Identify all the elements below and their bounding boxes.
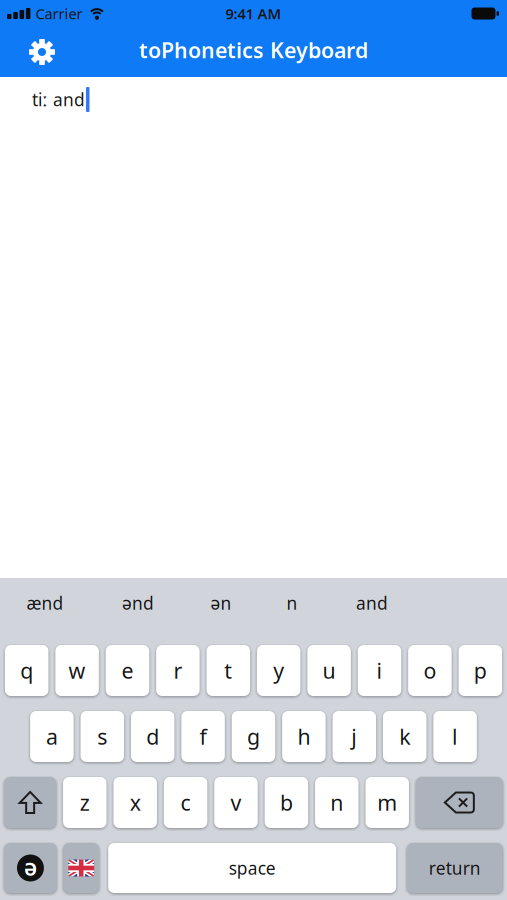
button[interactable]: p — [458, 645, 502, 696]
staticText: j — [351, 722, 357, 751]
button[interactable]: s — [81, 711, 124, 762]
button[interactable]: ən — [210, 591, 231, 614]
staticText: s — [97, 722, 107, 751]
button[interactable]: a — [30, 711, 74, 762]
button[interactable]: y — [257, 645, 300, 696]
staticText: space — [229, 856, 276, 879]
staticText: l — [452, 722, 458, 751]
button[interactable]: ənd — [122, 591, 154, 614]
staticText: p — [474, 656, 487, 685]
staticText: v — [230, 788, 241, 817]
button[interactable]: h — [282, 711, 326, 762]
staticText: i — [376, 656, 382, 685]
button[interactable]: u — [307, 645, 351, 696]
button[interactable]: i — [358, 645, 401, 696]
staticText: Carrier — [35, 4, 82, 23]
staticText: y — [273, 656, 284, 685]
staticText: m — [377, 788, 397, 817]
button[interactable]: g — [232, 711, 275, 762]
button[interactable]: z — [63, 777, 107, 828]
button[interactable]: e — [106, 645, 149, 696]
button[interactable]: Settings — [29, 39, 55, 65]
button[interactable]: c — [164, 777, 207, 828]
button[interactable]: k — [383, 711, 426, 762]
button[interactable]: Delete — [416, 777, 503, 828]
button[interactable]: ænd — [26, 591, 63, 614]
button[interactable]: space — [108, 843, 396, 893]
button[interactable]: and — [356, 591, 388, 614]
button[interactable]: q — [5, 645, 48, 696]
staticText: z — [80, 788, 90, 817]
staticText: u — [323, 656, 336, 685]
button[interactable]: m — [365, 777, 409, 828]
staticText: n — [286, 591, 297, 614]
button[interactable]: j — [332, 711, 376, 762]
button[interactable]: b — [265, 777, 308, 828]
staticText: g — [247, 722, 260, 751]
button[interactable]: r — [156, 645, 200, 696]
button[interactable]: l — [433, 711, 477, 762]
staticText: h — [297, 722, 310, 751]
staticText: and — [356, 591, 388, 614]
staticText: x — [130, 788, 141, 817]
staticText: w — [69, 656, 86, 685]
staticText: c — [181, 788, 191, 817]
button[interactable]: o — [408, 645, 452, 696]
button[interactable]: w — [55, 645, 99, 696]
button[interactable]: Shift — [4, 777, 56, 828]
staticText: 9:41 AM — [225, 4, 281, 23]
button[interactable]: x — [113, 777, 157, 828]
staticText: return — [429, 856, 481, 879]
staticText: q — [20, 656, 33, 685]
staticText: f — [200, 722, 207, 751]
staticText: ə — [24, 852, 37, 882]
staticText: ənd — [122, 591, 154, 614]
staticText: k — [399, 722, 410, 751]
button[interactable]: return — [407, 843, 503, 893]
staticText: t — [224, 656, 232, 685]
button[interactable]: t — [206, 645, 250, 696]
staticText: ən — [210, 591, 231, 614]
staticText: r — [173, 656, 182, 685]
staticText: o — [423, 656, 436, 685]
button[interactable]: Next keyboard — [63, 843, 99, 893]
button[interactable]: n — [315, 777, 358, 828]
button[interactable]: n — [286, 591, 297, 614]
staticText: tiː and — [32, 88, 85, 111]
staticText: d — [146, 722, 159, 751]
staticText: toPhonetics Keyboard — [139, 36, 368, 64]
button[interactable]: v — [214, 777, 258, 828]
button[interactable]: Schwa symbols — [4, 843, 57, 893]
button[interactable]: f — [181, 711, 225, 762]
staticText: n — [330, 788, 343, 817]
staticText: a — [46, 722, 58, 751]
staticText: ænd — [26, 591, 63, 614]
staticText: b — [280, 788, 293, 817]
button[interactable]: d — [131, 711, 174, 762]
staticText: e — [121, 656, 133, 685]
